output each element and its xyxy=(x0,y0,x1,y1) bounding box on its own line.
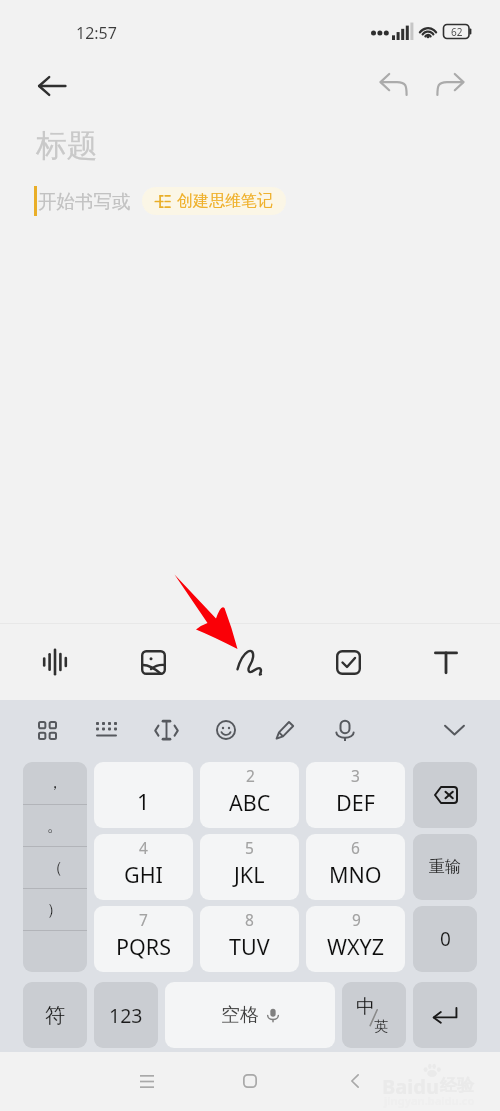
staticText: 创建思维笔记 xyxy=(177,191,273,211)
button[interactable]: Home xyxy=(226,1057,274,1105)
button[interactable]: 空格 xyxy=(165,982,335,1048)
staticText: 1 xyxy=(137,786,150,816)
button[interactable]: （ xyxy=(23,847,87,888)
button[interactable]: Checklist xyxy=(320,634,376,690)
button[interactable]: Text style xyxy=(418,634,474,690)
staticText: ABC xyxy=(229,788,271,817)
staticText: 2 xyxy=(246,765,255,786)
button[interactable]: Backspace xyxy=(413,762,477,828)
staticText: 英 xyxy=(374,1018,388,1036)
button[interactable]: 123 xyxy=(94,982,158,1048)
button[interactable]: 4 xyxy=(94,834,193,900)
staticText: 。 xyxy=(47,816,63,836)
button[interactable]: Voice input xyxy=(325,710,365,750)
staticText: TUV xyxy=(229,932,270,961)
button[interactable]: 创建思维笔记 xyxy=(142,187,286,215)
staticText: MNO xyxy=(329,860,382,889)
button[interactable]: 重输 xyxy=(413,834,477,900)
button[interactable]: Back xyxy=(28,62,76,110)
button[interactable]: 。 xyxy=(23,805,87,846)
button[interactable]: 3 xyxy=(306,762,405,828)
staticText: PQRS xyxy=(116,932,171,961)
staticText: 7 xyxy=(139,909,148,930)
button[interactable]: Move cursor xyxy=(146,710,186,750)
button[interactable]: 符 xyxy=(23,982,87,1048)
staticText: 0 xyxy=(440,926,451,952)
button[interactable]: 9 xyxy=(306,906,405,972)
staticText: 9 xyxy=(352,909,361,930)
button[interactable]: Handwriting xyxy=(222,634,278,690)
button[interactable]: Keyboard layout xyxy=(86,710,126,750)
button[interactable]: Enter xyxy=(413,982,477,1048)
button[interactable]: 0 xyxy=(413,906,477,972)
button[interactable]: Redo xyxy=(426,62,474,110)
staticText: 经验 xyxy=(440,1075,474,1096)
button[interactable]: 8 xyxy=(200,906,299,972)
button[interactable]: Undo xyxy=(370,62,418,110)
staticText: 重输 xyxy=(429,857,461,877)
staticText: WXYZ xyxy=(327,932,385,961)
button[interactable]: 7 xyxy=(94,906,193,972)
staticText: （ xyxy=(47,858,63,878)
button[interactable]: ） xyxy=(23,889,87,930)
button[interactable]: Symbols panel xyxy=(27,710,67,750)
staticText: JKL xyxy=(234,860,265,889)
staticText: DEF xyxy=(336,788,375,817)
staticText: 123 xyxy=(109,1002,143,1029)
button[interactable]: 6 xyxy=(306,834,405,900)
button[interactable]: Recents xyxy=(123,1057,171,1105)
staticText: 5 xyxy=(245,837,254,858)
staticText: 标题 xyxy=(36,126,98,165)
button[interactable]: Hide keyboard xyxy=(434,710,474,750)
button[interactable]: Back xyxy=(331,1057,379,1105)
button[interactable]: Handwriting input xyxy=(265,710,305,750)
staticText: ， xyxy=(47,773,63,793)
staticText: 符 xyxy=(45,1003,65,1028)
staticText: 中 xyxy=(356,995,375,1019)
button[interactable]: 1 xyxy=(94,762,193,828)
button[interactable]: Audio note xyxy=(27,634,83,690)
staticText: 12:57 xyxy=(76,22,117,44)
button[interactable]: 5 xyxy=(200,834,299,900)
staticText: 62 xyxy=(451,25,463,39)
button[interactable]: Insert image xyxy=(125,634,181,690)
staticText: GHI xyxy=(124,860,163,889)
button[interactable]: 中 xyxy=(342,982,406,1048)
staticText: ） xyxy=(47,900,63,920)
staticText: Baidu xyxy=(382,1073,439,1100)
staticText: 8 xyxy=(245,909,254,930)
button[interactable]: 2 xyxy=(200,762,299,828)
staticText: 开始书写或 xyxy=(38,190,131,213)
staticText: 6 xyxy=(351,837,360,858)
staticText: 3 xyxy=(351,765,360,786)
button[interactable]: ， xyxy=(23,762,87,804)
staticText: 空格 xyxy=(221,1003,259,1027)
button[interactable]: Emoji xyxy=(206,710,246,750)
staticText: 4 xyxy=(139,837,148,858)
